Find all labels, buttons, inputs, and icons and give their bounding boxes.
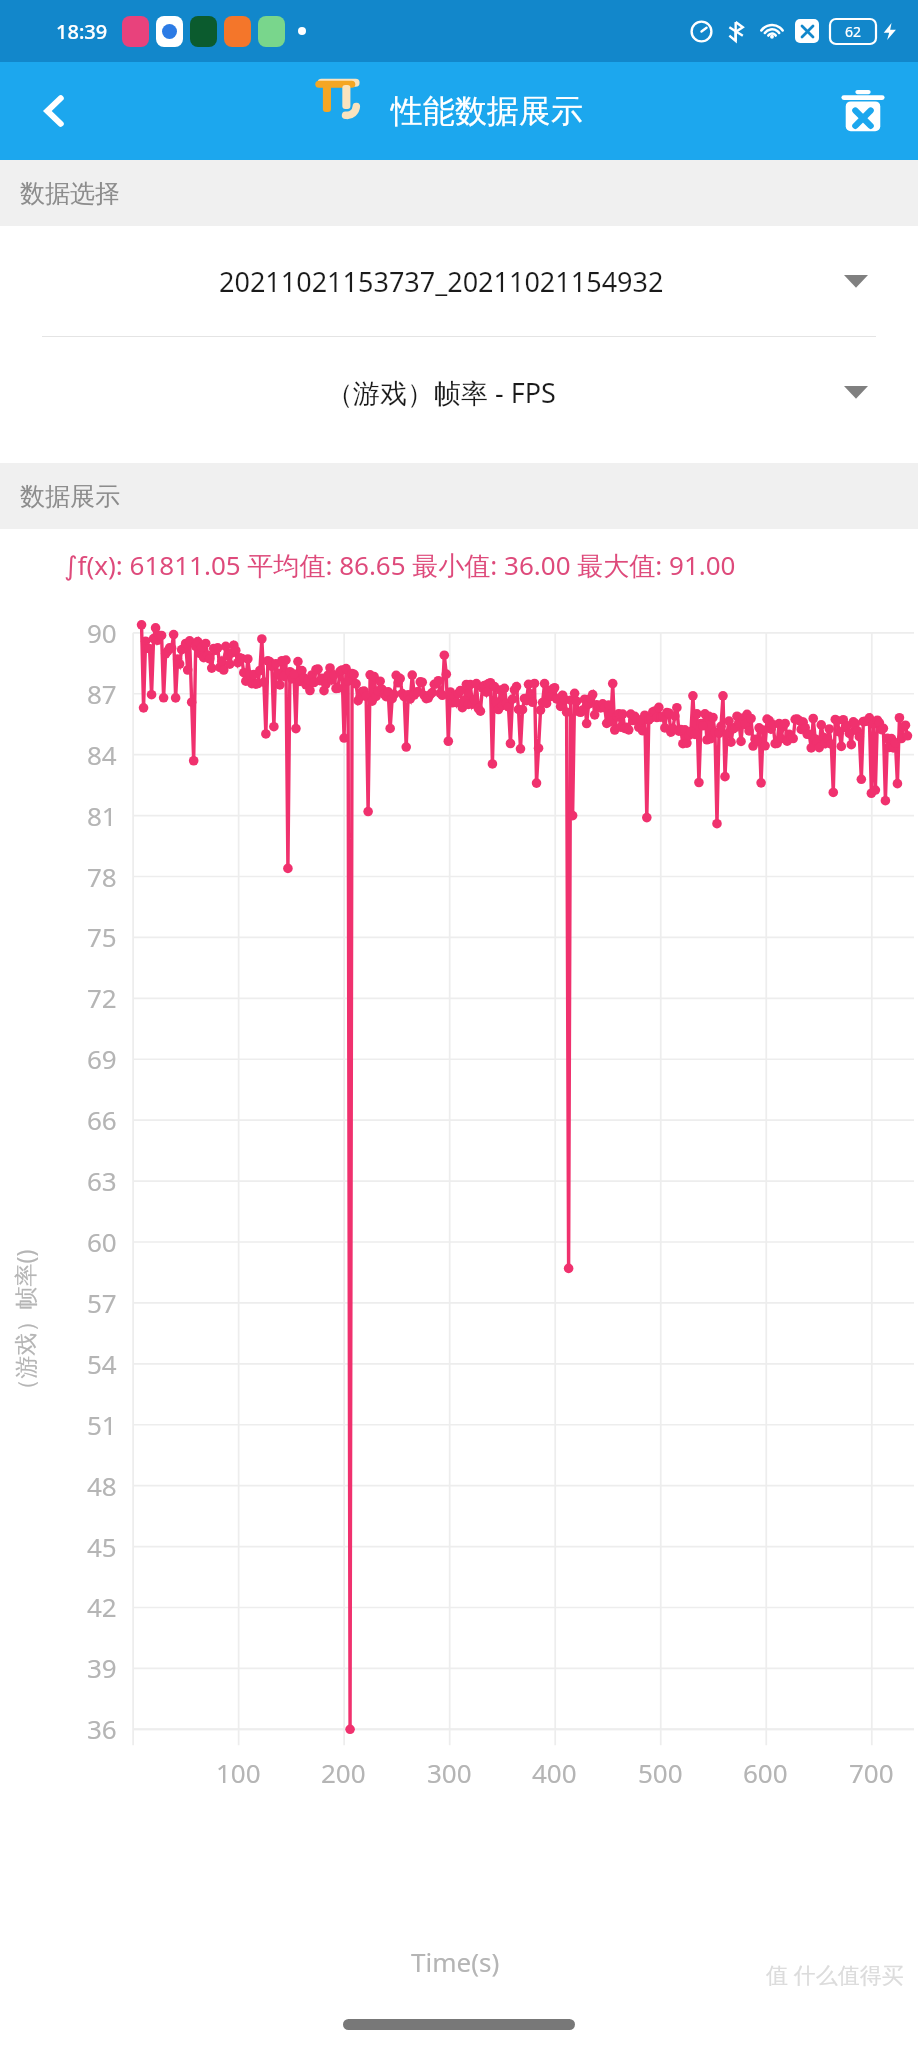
staticText: 57 (87, 1285, 117, 1320)
staticText: 63 (87, 1163, 117, 1198)
staticText: 78 (87, 859, 117, 894)
staticText: 72 (87, 980, 117, 1015)
staticText: 60 (87, 1224, 117, 1259)
button[interactable]: 20211021153737_20211021154932 (0, 226, 918, 336)
staticText: 87 (87, 676, 117, 711)
button[interactable]: （游戏）帧率 - FPS (0, 337, 918, 447)
staticText: 81 (87, 798, 117, 833)
staticText: 值 什么值得买 (766, 1959, 904, 1989)
staticText: 18:39 (56, 18, 108, 45)
staticText: 数据展示 (20, 481, 120, 512)
staticText: 性能数据展示 (391, 91, 583, 131)
staticText: （游戏）帧率 - FPS (326, 374, 556, 411)
staticText: ∫f(x): 61811.05 平均值: 86.65 最小值: 36.00 最大… (64, 547, 736, 583)
staticText: 75 (87, 919, 117, 954)
staticText: 200 (321, 1755, 366, 1790)
staticText: 600 (743, 1755, 788, 1790)
staticText: 500 (638, 1755, 683, 1790)
staticText: 48 (87, 1468, 117, 1503)
staticText: 400 (532, 1755, 577, 1790)
staticText: 700 (849, 1755, 894, 1790)
button[interactable]: Delete (832, 80, 894, 142)
staticText: 39 (87, 1650, 117, 1685)
staticText: 20211021153737_20211021154932 (219, 263, 664, 300)
staticText: 数据选择 (20, 178, 120, 209)
staticText: Time(s) (411, 1944, 500, 1979)
staticText: 69 (87, 1041, 117, 1076)
button[interactable]: Back (24, 80, 86, 142)
staticText: 45 (87, 1529, 117, 1564)
staticText: 90 (87, 615, 117, 650)
staticText: 42 (87, 1589, 117, 1624)
staticText: （游戏）帧率() (8, 1249, 39, 1401)
staticText: 51 (87, 1407, 117, 1442)
staticText: 54 (87, 1346, 117, 1381)
staticText: 66 (87, 1102, 117, 1137)
staticText: 84 (87, 737, 117, 772)
staticText: 36 (87, 1711, 117, 1746)
staticText: 300 (427, 1755, 472, 1790)
staticText: 100 (216, 1755, 261, 1790)
staticText: 62 (845, 22, 862, 41)
